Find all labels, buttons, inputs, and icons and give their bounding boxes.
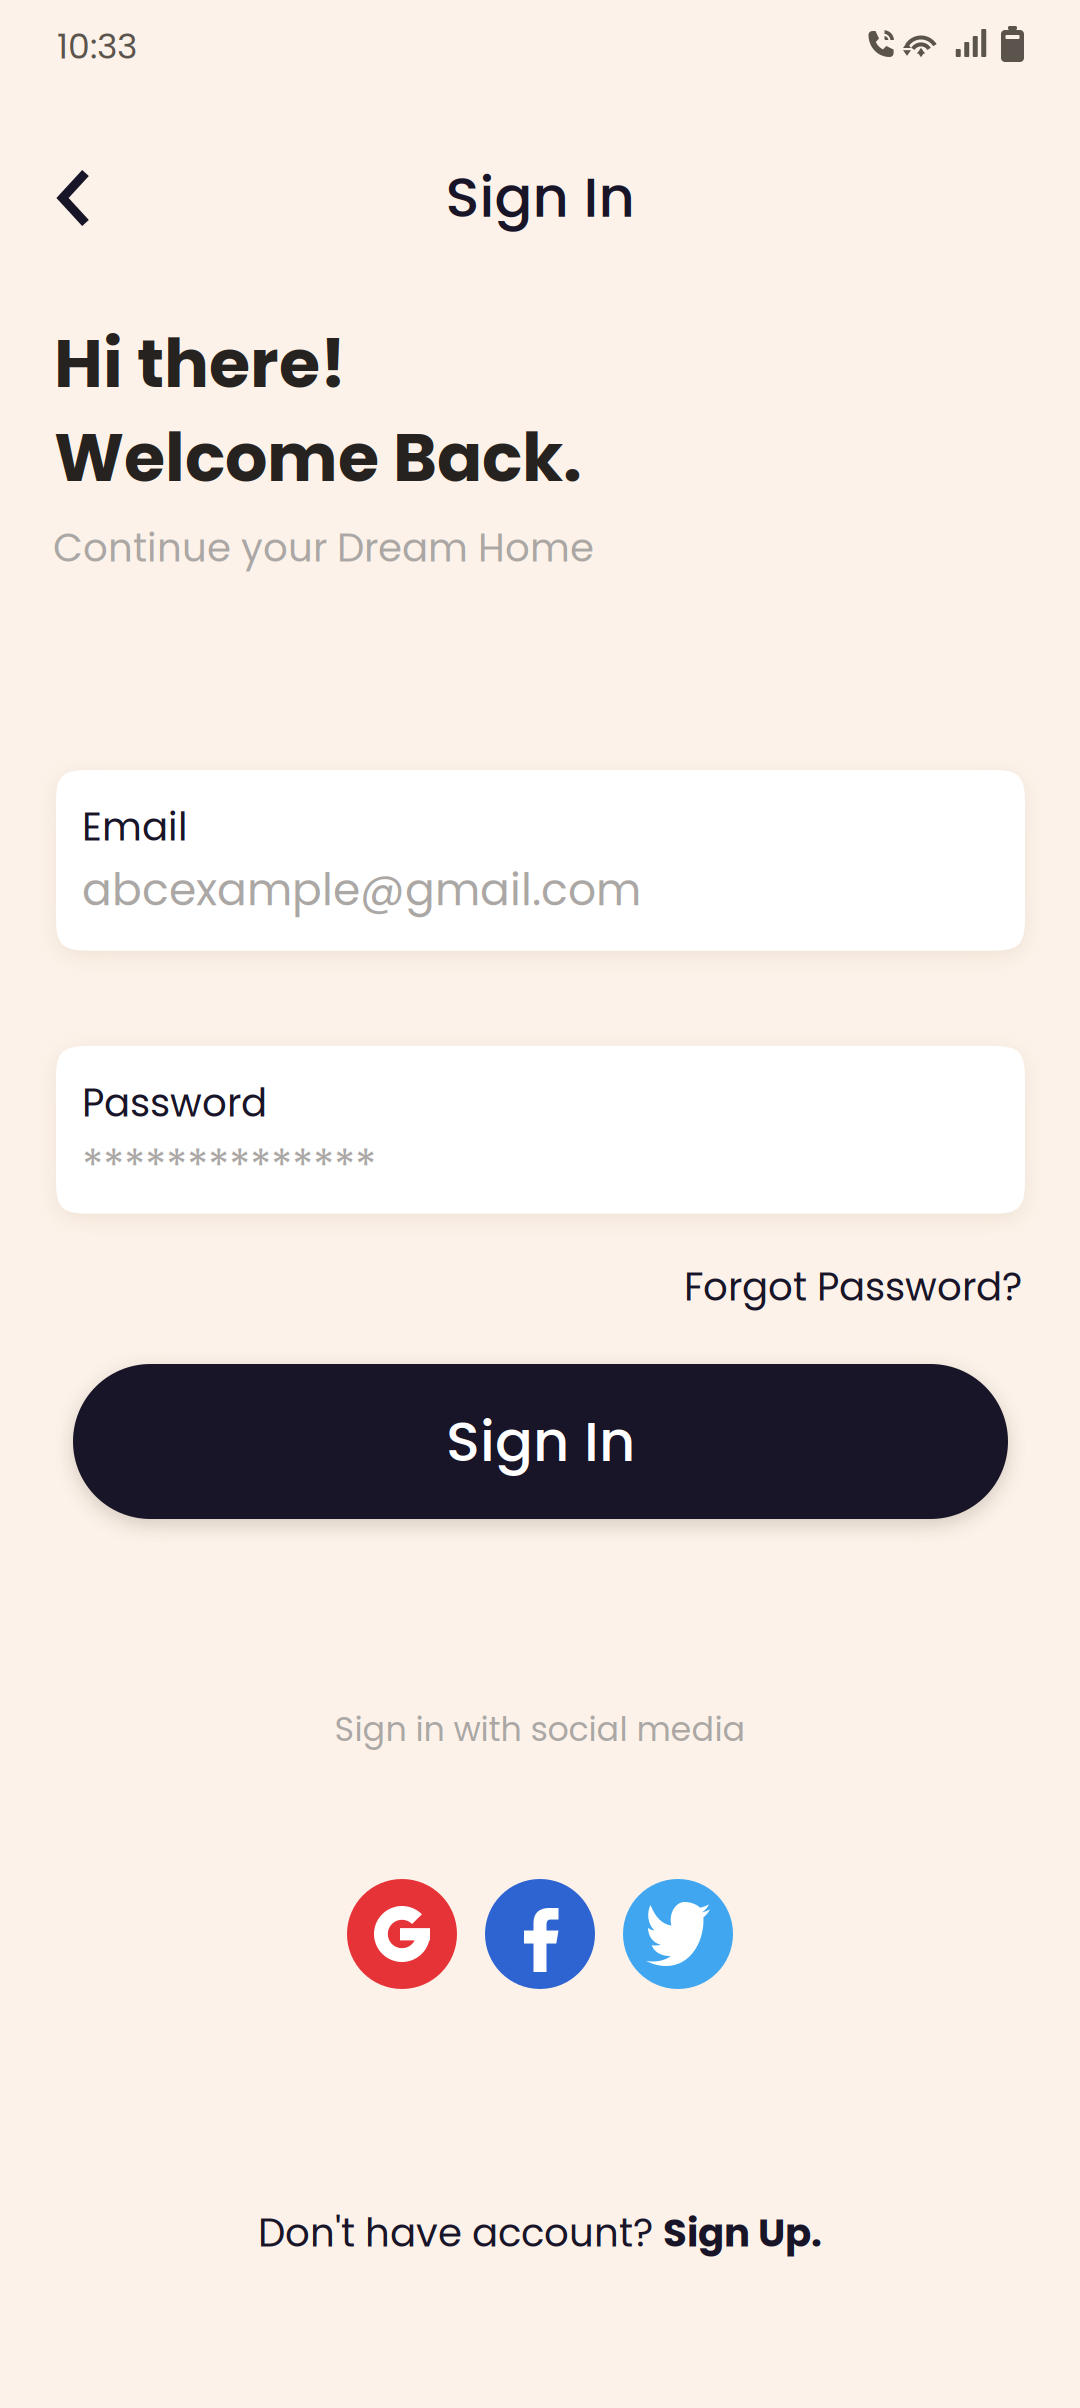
button[interactable]: Sign in with Google	[347, 1879, 457, 1989]
staticText: Welcome Back.	[54, 411, 582, 504]
button[interactable]: Sign in with Twitter	[623, 1879, 733, 1989]
button[interactable]: Back	[24, 154, 112, 242]
staticText: Sign Up.	[663, 2206, 822, 2260]
staticText: Sign In	[446, 1402, 635, 1481]
staticText: Forgot Password?	[684, 1260, 1022, 1314]
button[interactable]: Don't have account?	[0, 2206, 1080, 2260]
staticText: abcexample@gmail.com	[82, 859, 641, 921]
staticText: Email	[82, 800, 188, 854]
button[interactable]: Forgot Password?	[0, 1260, 1022, 1314]
staticText: Password	[82, 1076, 267, 1130]
staticText: Sign In	[445, 158, 634, 236]
button[interactable]: Sign In	[73, 1364, 1008, 1519]
staticText: **************	[82, 1135, 376, 1197]
button[interactable]: Sign in with Facebook	[485, 1879, 595, 1989]
staticText: Continue your Dream Home	[53, 521, 594, 575]
staticText: Sign in with social media	[334, 1706, 745, 1753]
staticText: Don't have account?	[258, 2206, 663, 2260]
staticText: 10:33	[57, 22, 137, 70]
staticText: Hi there!	[54, 317, 346, 410]
